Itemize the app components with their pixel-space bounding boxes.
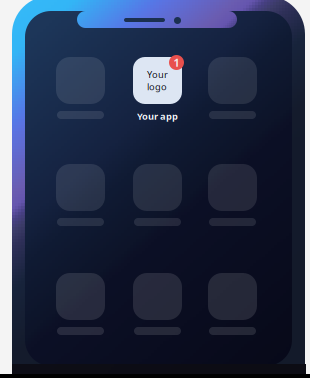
button[interactable]: App (133, 273, 182, 335)
staticText: Your logo (147, 68, 168, 93)
button[interactable]: App (133, 164, 182, 226)
button[interactable]: App (208, 57, 257, 119)
button[interactable]: App (56, 273, 105, 335)
staticText: 1 (173, 55, 179, 70)
button[interactable]: App (208, 164, 257, 226)
button[interactable]: App (208, 273, 257, 335)
button[interactable]: App (56, 57, 105, 119)
staticText: Your app (137, 110, 178, 122)
button[interactable]: App (56, 164, 105, 226)
button[interactable]: Your logo (133, 57, 182, 122)
